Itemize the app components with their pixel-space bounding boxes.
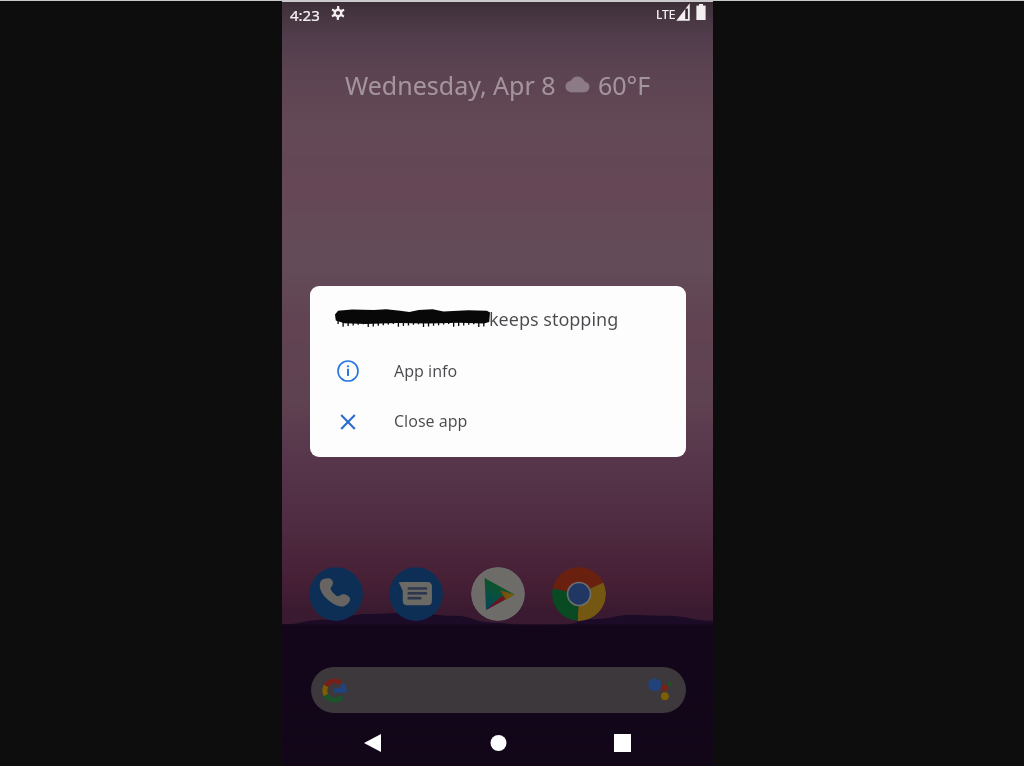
button[interactable]: Search — [311, 667, 686, 713]
button[interactable]: Home — [480, 724, 517, 761]
button[interactable]: Play Store — [471, 567, 525, 621]
staticText: Wednesday, Apr 8 — [345, 68, 556, 102]
button[interactable]: Close app — [310, 397, 686, 447]
button[interactable]: Messages — [389, 567, 443, 621]
staticText: Close app — [394, 410, 468, 432]
button[interactable]: Chrome — [552, 567, 606, 621]
staticText: 4:23 — [290, 5, 320, 25]
staticText: keeps stopping — [489, 307, 619, 332]
button[interactable]: Phone — [309, 567, 363, 621]
staticText: LTE — [656, 6, 676, 22]
button[interactable]: App info — [310, 346, 686, 396]
staticText: 60°F — [598, 68, 651, 102]
button[interactable]: Recent apps — [604, 724, 641, 761]
button[interactable]: Back — [354, 724, 391, 761]
staticText: App info — [394, 360, 458, 382]
button[interactable]: Date and weather — [282, 68, 713, 102]
